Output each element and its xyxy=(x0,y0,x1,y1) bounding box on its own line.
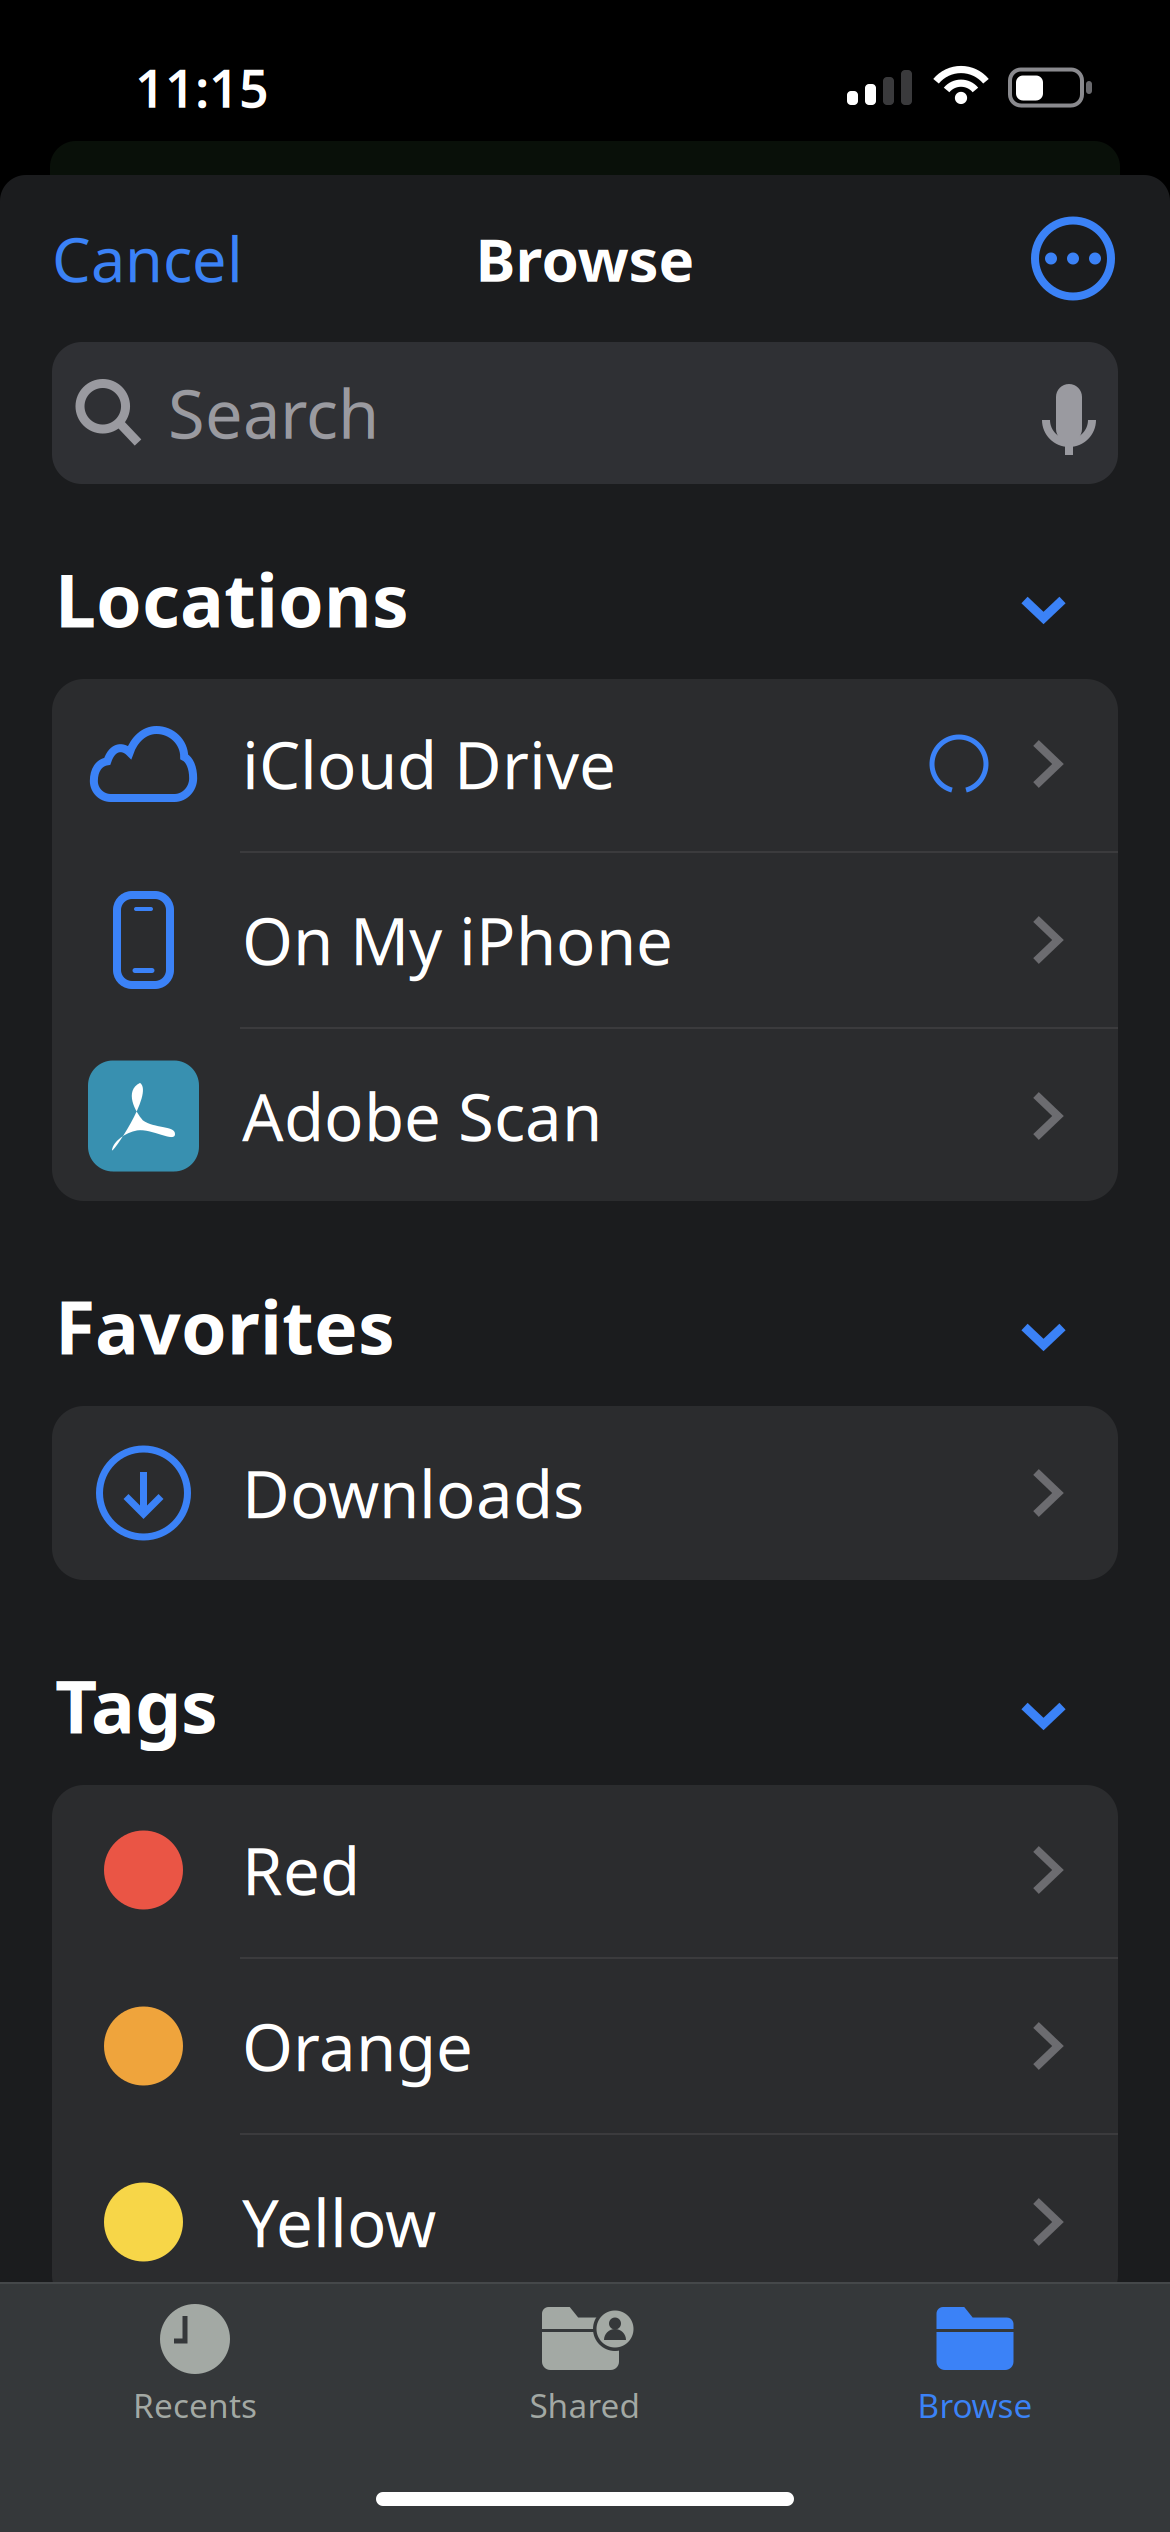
button[interactable]: More xyxy=(1028,175,1118,342)
staticText: Red xyxy=(242,1827,360,1913)
button[interactable]: On My iPhone xyxy=(52,853,1118,1027)
staticText: Tags xyxy=(55,1656,218,1754)
staticText: iCloud Drive xyxy=(242,721,616,807)
staticText: Downloads xyxy=(242,1450,584,1536)
staticText: On My iPhone xyxy=(242,897,673,983)
staticText: Recents xyxy=(133,2383,257,2427)
button[interactable]: Orange xyxy=(52,1959,1118,2133)
staticText: 11:15 xyxy=(135,53,269,122)
staticText: Locations xyxy=(55,550,409,648)
button[interactable]: Tags xyxy=(0,1662,1170,1748)
staticText: Browse xyxy=(475,219,694,298)
button[interactable]: Favorites xyxy=(0,1283,1170,1369)
button[interactable]: Shared xyxy=(390,2282,780,2532)
staticText: Search xyxy=(168,369,379,457)
button[interactable]: iCloud Drive xyxy=(52,677,1118,851)
staticText: Browse xyxy=(917,2383,1032,2427)
button[interactable]: Yellow xyxy=(52,2135,1118,2309)
button[interactable]: Red xyxy=(52,1783,1118,1957)
button[interactable]: Browse xyxy=(780,2282,1170,2532)
button[interactable]: Cancel xyxy=(52,175,243,342)
staticText: Favorites xyxy=(55,1277,395,1375)
button[interactable]: Locations xyxy=(0,556,1170,642)
staticText: Shared xyxy=(529,2383,640,2427)
staticText: Adobe Scan xyxy=(242,1073,602,1159)
button[interactable]: Downloads xyxy=(52,1406,1118,1580)
button[interactable]: Adobe Scan xyxy=(52,1029,1118,1203)
staticText: Cancel xyxy=(52,218,243,299)
staticText: Orange xyxy=(242,2003,473,2089)
button[interactable]: Recents xyxy=(0,2282,390,2532)
staticText: Yellow xyxy=(242,2179,436,2265)
